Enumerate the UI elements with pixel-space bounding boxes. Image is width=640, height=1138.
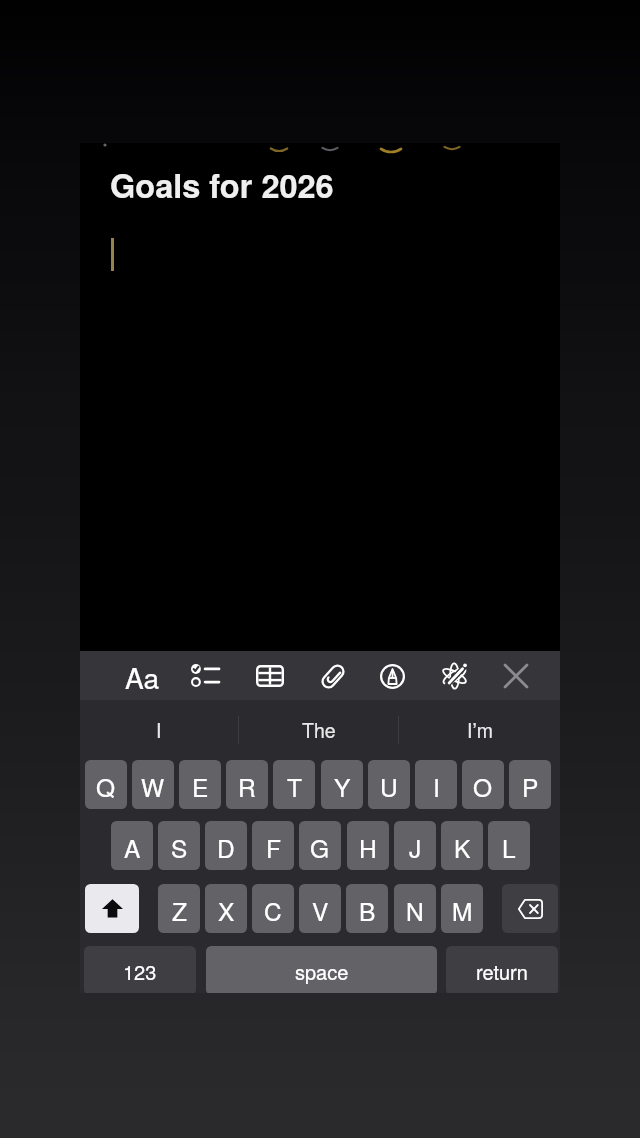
staticText: I xyxy=(433,769,440,804)
staticText: H xyxy=(359,830,377,865)
button[interactable]: Markup xyxy=(374,658,411,695)
button[interactable]: I xyxy=(415,760,457,809)
button[interactable]: S xyxy=(158,821,200,870)
staticText: B xyxy=(359,893,376,928)
staticText: V xyxy=(312,893,329,928)
button[interactable]: The xyxy=(239,700,398,760)
button[interactable]: return xyxy=(446,946,558,993)
staticText: E xyxy=(192,769,209,804)
button[interactable]: Apple Intelligence xyxy=(435,656,474,696)
staticText: T xyxy=(287,769,302,804)
button[interactable]: W xyxy=(132,760,174,809)
staticText: Y xyxy=(334,769,351,804)
button[interactable]: Table xyxy=(250,659,290,693)
staticText: 123 xyxy=(123,957,157,986)
staticText: space xyxy=(295,957,349,986)
staticText: return xyxy=(476,957,528,986)
staticText: K xyxy=(454,830,471,865)
staticText: Q xyxy=(96,769,116,804)
staticText: Aa xyxy=(125,657,160,695)
staticText: R xyxy=(238,769,256,804)
button[interactable]: J xyxy=(394,821,436,870)
staticText: D xyxy=(217,830,235,865)
button[interactable]: B xyxy=(346,884,388,933)
button[interactable]: space xyxy=(206,946,437,993)
staticText: N xyxy=(406,893,424,928)
staticText: Z xyxy=(172,893,187,928)
staticText: O xyxy=(473,769,493,804)
button[interactable]: V xyxy=(299,884,341,933)
button[interactable]: D xyxy=(205,821,247,870)
button[interactable]: P xyxy=(509,760,551,809)
button[interactable]: E xyxy=(179,760,221,809)
button[interactable]: R xyxy=(226,760,268,809)
staticText: J xyxy=(409,830,422,865)
button[interactable]: U xyxy=(368,760,410,809)
staticText: I xyxy=(156,716,162,744)
staticText: G xyxy=(310,830,330,865)
button[interactable]: I xyxy=(80,700,238,760)
button[interactable]: Q xyxy=(85,760,127,809)
staticText: L xyxy=(502,830,516,865)
staticText: F xyxy=(266,830,281,865)
staticText: S xyxy=(171,830,188,865)
button[interactable]: T xyxy=(273,760,315,809)
staticText: M xyxy=(452,893,473,928)
button[interactable]: M xyxy=(441,884,483,933)
button[interactable]: K xyxy=(441,821,483,870)
button[interactable]: 123 xyxy=(84,946,196,993)
button[interactable]: Y xyxy=(321,760,363,809)
button[interactable]: Backspace xyxy=(502,884,558,933)
button[interactable]: A xyxy=(111,821,153,870)
button[interactable]: I’m xyxy=(399,700,560,760)
button[interactable]: H xyxy=(347,821,389,870)
staticText: The xyxy=(302,716,336,744)
staticText: X xyxy=(218,893,235,928)
staticText: C xyxy=(264,893,282,928)
button[interactable]: G xyxy=(299,821,341,870)
button[interactable]: Shift xyxy=(85,884,139,933)
staticText: Goals for 2026 xyxy=(110,161,334,208)
button[interactable]: Z xyxy=(158,884,200,933)
staticText: I’m xyxy=(467,716,493,744)
button[interactable]: C xyxy=(252,884,294,933)
staticText: W xyxy=(141,769,165,804)
staticText: U xyxy=(380,769,398,804)
button[interactable]: Text format xyxy=(122,656,162,694)
button[interactable]: O xyxy=(462,760,504,809)
button[interactable]: Checklist xyxy=(185,658,225,693)
button[interactable]: Attach file xyxy=(314,657,352,696)
button[interactable]: L xyxy=(488,821,530,870)
button[interactable]: X xyxy=(205,884,247,933)
staticText: P xyxy=(522,769,539,804)
button[interactable]: Close keyboard xyxy=(499,659,533,693)
button[interactable]: N xyxy=(394,884,436,933)
staticText: A xyxy=(124,830,141,865)
button[interactable]: F xyxy=(252,821,294,870)
